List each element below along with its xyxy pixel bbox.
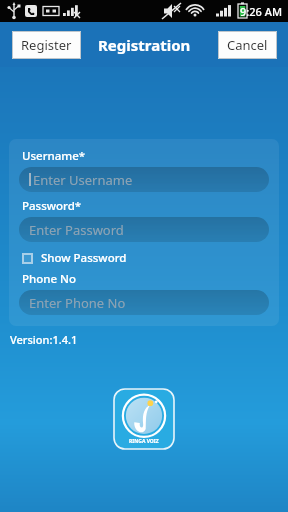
staticText: RINGA VOIZ	[129, 438, 159, 445]
button[interactable]: Enter Phone No	[19, 290, 269, 315]
staticText: Enter Password	[29, 221, 124, 239]
button[interactable]: Ringa Voiz logo	[112, 387, 176, 451]
button[interactable]: Register	[12, 31, 81, 59]
staticText: Enter Phone No	[29, 294, 126, 312]
button[interactable]: Enter Password	[19, 217, 269, 242]
staticText: Phone No	[22, 271, 77, 287]
staticText: Username*	[22, 148, 86, 164]
staticText: Version:1.4.1	[10, 332, 78, 347]
staticText: Show Password	[41, 250, 127, 266]
staticText: Cancel	[227, 36, 268, 54]
button[interactable]: Enter Username	[19, 167, 269, 192]
staticText: Register	[21, 36, 72, 54]
staticText: Enter Username	[33, 171, 133, 189]
button[interactable]: Show Password	[19, 247, 130, 269]
button[interactable]: Cancel	[218, 31, 277, 59]
staticText: 9:26 AM	[240, 4, 283, 19]
staticText: Password*	[22, 198, 82, 214]
staticText: Registration	[98, 35, 191, 55]
